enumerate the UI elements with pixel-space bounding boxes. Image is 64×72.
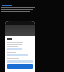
button[interactable]: Continue [7, 64, 33, 69]
